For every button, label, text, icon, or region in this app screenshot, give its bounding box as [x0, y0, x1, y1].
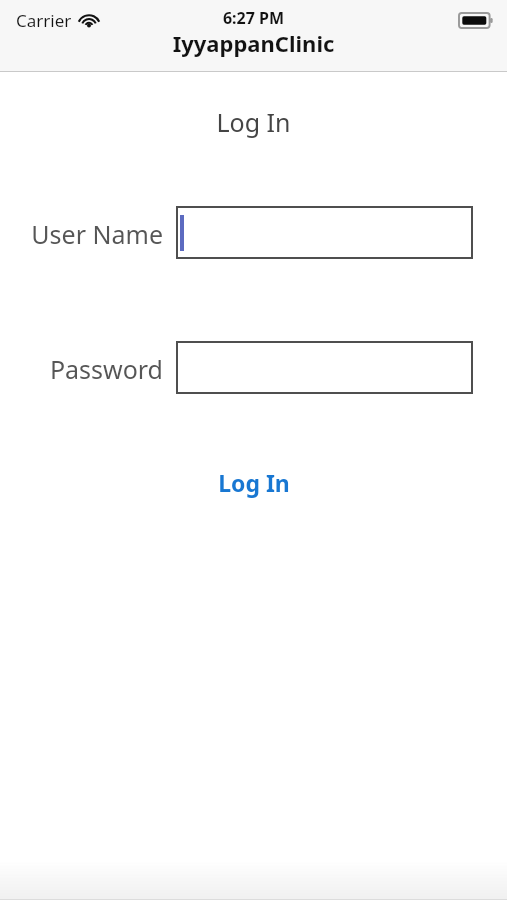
staticText: 6:27 PM	[0, 7, 507, 29]
staticText: Carrier	[16, 9, 72, 32]
other: Wi-Fi signal	[77, 11, 101, 29]
other: Battery full	[459, 13, 493, 28]
staticText: IyyappanClinic	[0, 28, 507, 58]
button[interactable]: Password input field	[176, 341, 473, 394]
button[interactable]: User Name input field	[176, 206, 473, 259]
staticText: Password	[0, 352, 163, 386]
staticText: Log In	[218, 467, 290, 498]
button[interactable]: Log In	[0, 462, 507, 502]
staticText: User Name	[0, 217, 163, 251]
staticText: Log In	[0, 105, 507, 139]
